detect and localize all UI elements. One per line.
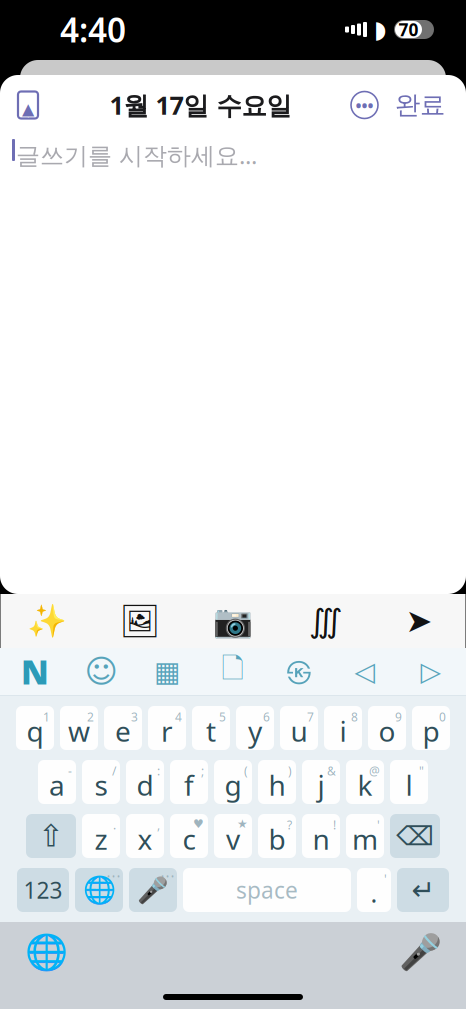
button[interactable]: Bookmark xyxy=(0,81,56,129)
button[interactable]: 6 xyxy=(236,706,274,750)
staticText: ••• xyxy=(355,94,373,116)
staticText: @ xyxy=(369,763,380,779)
staticText: 🖼 xyxy=(119,603,160,639)
button[interactable]: Location xyxy=(372,594,465,648)
staticText: q xyxy=(26,712,43,750)
staticText: 4 xyxy=(175,709,182,725)
button[interactable]: Change language xyxy=(75,868,123,912)
staticText: . xyxy=(113,817,116,833)
button[interactable]: ' xyxy=(357,868,391,912)
staticText: 🌐 xyxy=(24,932,67,972)
button[interactable]: ! xyxy=(302,814,340,858)
staticText: 70 xyxy=(398,18,418,41)
staticText: : xyxy=(157,763,160,779)
staticText: ▷ xyxy=(420,656,441,687)
button[interactable]: Photo library xyxy=(93,594,186,648)
button[interactable]: Magic effects xyxy=(0,594,93,648)
staticText: m xyxy=(352,820,378,858)
button[interactable]: Shift xyxy=(26,814,76,858)
staticText: h xyxy=(268,766,285,804)
staticText: ; xyxy=(201,763,204,779)
button[interactable]: Dictation xyxy=(390,928,450,976)
staticText: z xyxy=(94,820,107,858)
button[interactable]: : xyxy=(126,760,164,804)
staticText: o xyxy=(378,712,395,750)
staticText: c xyxy=(182,820,195,858)
button[interactable]: 4 xyxy=(148,706,186,750)
button[interactable]: Voice recording xyxy=(279,594,372,648)
button[interactable]: " xyxy=(390,760,428,804)
staticText: ◗ xyxy=(374,16,387,43)
button[interactable]: - xyxy=(38,760,76,804)
button[interactable]: 7 xyxy=(280,706,318,750)
staticText: g xyxy=(224,766,241,804)
staticText: v xyxy=(226,820,240,858)
staticText: ( xyxy=(244,763,248,779)
button[interactable]: Return xyxy=(397,868,449,912)
button[interactable]: More options xyxy=(345,91,384,118)
button[interactable]: Calculator xyxy=(134,648,200,695)
button[interactable]: . xyxy=(82,814,120,858)
staticText: 3 xyxy=(131,709,138,725)
button[interactable]: 2 xyxy=(60,706,98,750)
staticText: ! xyxy=(333,817,336,833)
button[interactable]: ★ xyxy=(214,814,252,858)
button[interactable]: Delete xyxy=(390,814,440,858)
staticText: 0 xyxy=(439,709,446,725)
button[interactable]: Emoji xyxy=(68,648,134,695)
staticText: 글쓰기를 시작하세요... xyxy=(16,139,257,171)
button[interactable]: 9 xyxy=(368,706,406,750)
button[interactable]: Switch keyboard xyxy=(16,928,76,976)
button[interactable]: 완료 xyxy=(384,81,456,129)
staticText: & xyxy=(327,763,336,779)
button[interactable]: @ xyxy=(346,760,384,804)
button[interactable]: ' xyxy=(346,814,384,858)
button[interactable]: / xyxy=(82,760,120,804)
staticText: n xyxy=(312,820,329,858)
staticText: l xyxy=(405,766,412,804)
button[interactable]: space xyxy=(183,868,351,912)
staticText: 1월 17일 수요일 xyxy=(109,88,291,122)
button[interactable]: Move right xyxy=(398,648,464,695)
staticText: 📷 xyxy=(213,603,253,639)
staticText: ' xyxy=(377,817,380,833)
button[interactable]: Translate xyxy=(266,648,332,695)
button[interactable]: 8 xyxy=(324,706,362,750)
staticText: space xyxy=(236,875,298,905)
staticText: / xyxy=(112,763,116,779)
button[interactable]: ( xyxy=(214,760,252,804)
staticText: ⇧ xyxy=(38,819,64,853)
staticText: 6 xyxy=(263,709,270,725)
staticText: ? xyxy=(287,817,292,833)
button[interactable]: Dictation xyxy=(129,868,177,912)
staticText: p xyxy=(422,712,439,750)
button[interactable]: ) xyxy=(258,760,296,804)
staticText: 1 xyxy=(43,709,50,725)
button[interactable]: Move left xyxy=(332,648,398,695)
staticText: 🎤 xyxy=(137,875,169,904)
staticText: - xyxy=(68,763,72,779)
staticText: ★ xyxy=(237,817,248,831)
button[interactable]: 3 xyxy=(104,706,142,750)
button[interactable]: Naver keyboard xyxy=(2,648,68,695)
button[interactable]: & xyxy=(302,760,340,804)
staticText: ) xyxy=(288,763,292,779)
button[interactable]: ♥ xyxy=(170,814,208,858)
button[interactable]: ; xyxy=(170,760,208,804)
button[interactable]: , xyxy=(126,814,164,858)
button[interactable]: 1 xyxy=(16,706,54,750)
staticText: ▲ xyxy=(22,100,34,118)
button[interactable]: ? xyxy=(258,814,296,858)
staticText: " xyxy=(419,763,424,779)
button[interactable]: Numbers xyxy=(17,868,69,912)
staticText: • • • xyxy=(107,871,120,882)
staticText: 2 xyxy=(87,709,94,725)
button[interactable]: Clipboard xyxy=(200,648,266,695)
staticText: 123 xyxy=(23,875,62,905)
staticText: w xyxy=(68,712,90,750)
button[interactable]: 5 xyxy=(192,706,230,750)
staticText: , xyxy=(157,817,160,833)
button[interactable]: Camera xyxy=(186,594,279,648)
staticText: ♥ xyxy=(193,817,204,831)
button[interactable]: 0 xyxy=(412,706,450,750)
